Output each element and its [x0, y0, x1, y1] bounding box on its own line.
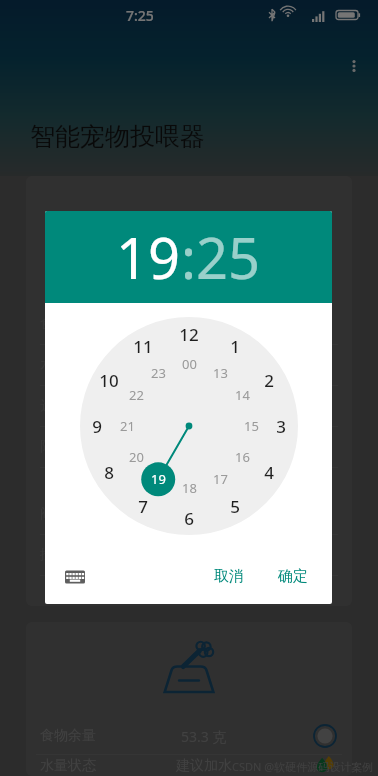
staticText: 1: [230, 335, 240, 358]
staticText: 7: [138, 495, 148, 518]
staticText: 食物余量: [40, 315, 96, 333]
staticText: 22: [129, 386, 144, 404]
staticText: 建议加水: [176, 757, 232, 775]
button[interactable]: 限制克数: [40, 427, 338, 467]
staticText: 00: [182, 355, 197, 373]
staticText: 3: [276, 415, 286, 438]
staticText: 16: [235, 448, 250, 466]
staticText: 水量状态: [40, 356, 96, 374]
staticText: 14: [235, 386, 250, 404]
staticText: 15: [244, 417, 259, 435]
staticText: 食物余量: [40, 727, 96, 745]
staticText: CSDN @软硬件源码设计案例: [232, 759, 374, 774]
staticText: 确定: [278, 567, 308, 586]
staticText: 8: [104, 461, 114, 484]
staticText: 限制克数: [40, 438, 96, 456]
staticText: 17: [213, 470, 228, 488]
staticText: 2: [264, 369, 274, 392]
staticText: 取消: [214, 567, 244, 586]
staticText: 7:25: [126, 6, 154, 25]
staticText: 19: [151, 470, 166, 488]
staticText: 选择时间: [40, 397, 96, 415]
staticText: 18: [182, 479, 197, 497]
button[interactable]: 19: [116, 219, 181, 295]
staticText: 20: [129, 448, 144, 466]
button[interactable]: 水量状态: [40, 345, 338, 385]
button[interactable]: 食物余量: [40, 718, 338, 754]
button[interactable]: 确定: [268, 561, 318, 592]
staticText: 6: [184, 507, 194, 530]
staticText: 5: [230, 495, 240, 518]
button[interactable]: 选择时间: [40, 386, 338, 426]
staticText: 13: [213, 364, 228, 382]
button[interactable]: 食物余量: [40, 304, 338, 344]
button[interactable]: 按键控制: [40, 535, 338, 575]
button[interactable]: 取消: [204, 561, 254, 592]
staticText: 53.3 克: [181, 727, 227, 746]
staticText: 10: [99, 369, 119, 392]
staticText: 12: [179, 323, 199, 346]
staticText: 4: [264, 461, 274, 484]
staticText: 23: [151, 364, 166, 382]
staticText: 9: [92, 415, 102, 438]
staticText: 21: [120, 417, 135, 435]
staticText: 11: [133, 335, 153, 358]
staticText: 智能宠物投喂器: [30, 121, 205, 152]
staticText: 水量状态: [40, 757, 96, 775]
button[interactable]: 阀门状态: [40, 494, 338, 534]
button[interactable]: Switch to text input: [59, 561, 91, 593]
button[interactable]: 水量状态: [40, 755, 338, 776]
button[interactable]: :25: [181, 219, 261, 295]
button[interactable]: More options: [340, 52, 368, 80]
staticText: 按键控制: [40, 546, 96, 564]
staticText: 阀门状态: [40, 505, 96, 523]
